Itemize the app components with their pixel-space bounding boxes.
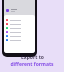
button[interactable]: [6, 34, 35, 38]
staticText: different formats: [10, 61, 54, 68]
button[interactable]: [6, 38, 35, 42]
button[interactable]: [6, 26, 35, 30]
staticText: Export to: [21, 54, 44, 61]
button[interactable]: [6, 22, 35, 26]
button[interactable]: [6, 30, 35, 34]
button[interactable]: [6, 18, 35, 22]
